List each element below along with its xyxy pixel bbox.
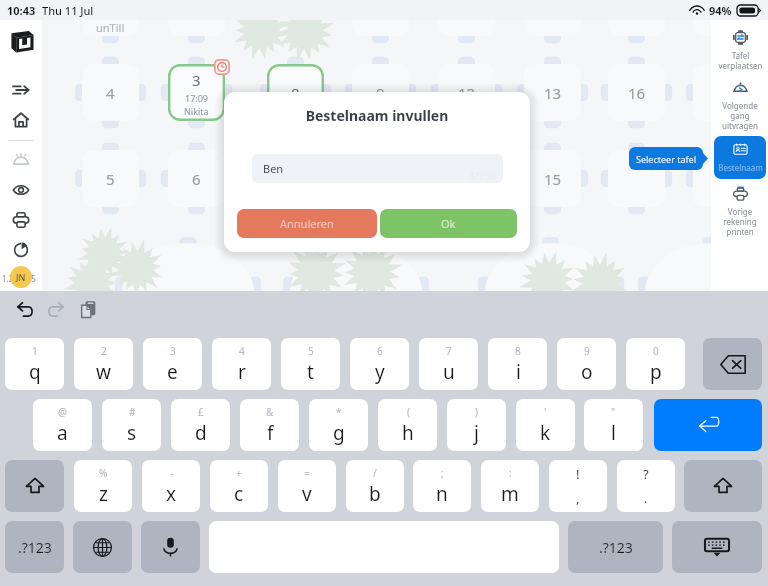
button[interactable]: 7 — [419, 338, 478, 390]
button[interactable]: 16 — [608, 64, 665, 121]
button[interactable]: : — [481, 460, 539, 512]
button[interactable]: enter — [654, 399, 762, 451]
button[interactable] — [693, 0, 750, 36]
staticText: 12 — [458, 83, 476, 103]
button[interactable]: 6 — [350, 338, 409, 390]
button[interactable]: ! — [549, 460, 607, 512]
button[interactable]: 9 — [352, 64, 409, 121]
button[interactable]: Selecteer tafel — [629, 147, 703, 170]
staticText: 7 — [446, 344, 452, 358]
button[interactable] — [267, 0, 324, 36]
button[interactable]: backspace — [703, 338, 762, 390]
staticText: 94% — [709, 3, 732, 18]
staticText: u — [443, 359, 455, 385]
staticText: 13 — [544, 83, 562, 103]
button[interactable]: / — [346, 460, 404, 512]
button[interactable]: 5 — [82, 150, 139, 207]
button[interactable]: 9 — [557, 338, 616, 390]
button[interactable]: ( — [378, 399, 437, 451]
button[interactable]: # — [102, 399, 161, 451]
button[interactable]: 12 — [438, 64, 495, 121]
button[interactable]: Redo — [40, 294, 72, 326]
button[interactable]: Paste — [72, 293, 104, 325]
button[interactable]: Tafel verplaatsen — [714, 24, 766, 77]
button[interactable]: Undo — [9, 294, 41, 326]
staticText: Selecteer tafel — [636, 153, 696, 165]
button[interactable]: 3 — [168, 64, 225, 121]
button[interactable]: 1 — [5, 338, 64, 390]
button[interactable]: unTill — [82, 0, 139, 36]
button[interactable]: * — [309, 399, 368, 451]
button[interactable]: 3 — [143, 338, 202, 390]
staticText: 2 — [101, 344, 107, 358]
button[interactable]: Volgende gang uitvragen — [714, 74, 766, 137]
button[interactable]: shift — [5, 460, 64, 512]
button[interactable]: £ — [171, 399, 230, 451]
staticText: : — [509, 466, 512, 480]
button[interactable]: .?123 — [568, 521, 663, 573]
button[interactable]: @ — [33, 399, 92, 451]
button[interactable]: Logout — [6, 75, 36, 105]
button[interactable] — [608, 150, 665, 207]
button[interactable]: mic — [141, 521, 200, 573]
button[interactable]: kbd — [672, 521, 762, 573]
button[interactable]: User JN — [10, 266, 32, 288]
staticText: 5 — [308, 344, 314, 358]
staticText: k — [540, 420, 551, 446]
button[interactable]: ) — [447, 399, 506, 451]
button[interactable]: ? — [617, 460, 675, 512]
button[interactable]: Home — [6, 105, 36, 135]
button[interactable]: 15 — [524, 150, 581, 207]
button[interactable]: " — [584, 399, 643, 451]
staticText: 17:09 — [185, 92, 209, 104]
button[interactable]: globe — [73, 521, 132, 573]
button[interactable]: 6 — [168, 150, 225, 207]
button[interactable]: 0 — [626, 338, 685, 390]
button[interactable] — [693, 150, 750, 207]
button[interactable]: 2 — [74, 338, 133, 390]
button[interactable]: = — [278, 460, 336, 512]
button[interactable]: Print — [6, 205, 36, 235]
button[interactable]: 13 — [524, 64, 581, 121]
button[interactable]: 8 — [267, 64, 324, 121]
button[interactable]: Ben — [252, 154, 503, 183]
button[interactable]: Report — [6, 235, 36, 265]
staticText: l — [611, 420, 616, 446]
button[interactable]: 8 — [488, 338, 547, 390]
button[interactable]: - — [142, 460, 200, 512]
button[interactable]: & — [240, 399, 299, 451]
staticText: - — [170, 466, 174, 480]
staticText: z — [99, 481, 108, 507]
button[interactable]: Bestelnaam — [714, 136, 766, 179]
button[interactable]: View — [6, 175, 36, 205]
button[interactable] — [693, 64, 750, 121]
staticText: 8 — [291, 83, 300, 103]
button[interactable]: + — [210, 460, 268, 512]
button[interactable]: 5 — [281, 338, 340, 390]
staticText: unTill — [96, 20, 125, 35]
button[interactable]: unTill logo — [10, 29, 34, 53]
staticText: a — [57, 420, 68, 446]
button[interactable]: 14 — [438, 150, 495, 207]
button[interactable]: Vorige rekening printen — [714, 180, 766, 243]
button[interactable]: ' — [516, 399, 575, 451]
staticText: 3 — [170, 344, 176, 358]
button[interactable]: 4 — [82, 64, 139, 121]
button[interactable]: shift — [684, 460, 762, 512]
button[interactable]: % — [74, 460, 132, 512]
button[interactable]: 4 — [212, 338, 271, 390]
button[interactable]: .?123 — [5, 521, 64, 573]
staticText: 4 — [239, 344, 245, 358]
button[interactable]: Ok — [380, 209, 517, 238]
button[interactable]: Annuleren — [237, 209, 377, 238]
staticText: r — [238, 359, 246, 385]
button[interactable]: Course — [6, 144, 36, 174]
button[interactable]: ; — [413, 460, 471, 512]
